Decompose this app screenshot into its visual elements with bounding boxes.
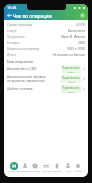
staticText: Банк получателя xyxy=(7,60,33,64)
button[interactable]: Help xyxy=(79,12,86,19)
staticText: Подключить xyxy=(62,76,80,80)
button[interactable]: Каталог xyxy=(41,162,51,173)
staticText: История xyxy=(30,170,40,173)
staticText: Итого xyxy=(7,53,42,57)
staticText: Получатель xyxy=(7,35,42,39)
staticText: Выполнено xyxy=(44,29,85,33)
staticText: Телефон xyxy=(7,41,42,45)
button[interactable]: Шаблон платежа xyxy=(7,85,86,93)
staticText: Сумма перевода xyxy=(7,23,42,27)
staticText: Не взимается банком xyxy=(44,53,85,57)
staticText: 3000 xyxy=(44,41,85,45)
staticText: 5555 •• 0000 xyxy=(44,47,85,51)
staticText: Автоматический перевод по времени, ежеме… xyxy=(7,75,59,83)
button[interactable]: Автоплатёж по СМС xyxy=(7,65,86,73)
button[interactable]: Главный xyxy=(9,162,19,173)
staticText: Платежи xyxy=(20,170,30,173)
staticText: за 0 ₽ xyxy=(68,80,75,83)
staticText: 4,97 ₽ xyxy=(44,23,85,27)
staticText: Чек по операции xyxy=(13,13,52,19)
button[interactable]: Автоматический перевод по времени, ежеме… xyxy=(7,75,86,83)
staticText: Автоплатёж по СМС xyxy=(7,67,59,71)
staticText: Главный xyxy=(9,170,19,173)
staticText: Комиссия за перевод xyxy=(7,47,42,51)
button[interactable]: История xyxy=(30,162,40,173)
button[interactable]: Back xyxy=(6,12,13,19)
button[interactable]: Профиль xyxy=(73,162,83,176)
staticText: Подключить xyxy=(62,66,80,70)
button[interactable]: Ещё xyxy=(63,162,73,173)
button[interactable]: Платежи xyxy=(20,162,30,173)
staticText: Каталог xyxy=(42,170,51,173)
staticText: Подключить xyxy=(62,86,80,90)
button[interactable]: Диалоги xyxy=(52,162,62,173)
staticText: за 0 ₽ xyxy=(68,70,75,73)
staticText: Иван И. Иванов xyxy=(44,35,85,39)
staticText: Шаблон платежа xyxy=(7,87,59,91)
staticText: Статус xyxy=(7,29,42,33)
staticText: Диалоги xyxy=(52,170,62,173)
staticText: за 0 ₽ xyxy=(68,90,75,93)
staticText: Ещё xyxy=(66,170,71,173)
staticText: Профиль xyxy=(73,170,83,176)
staticText: 10:48 xyxy=(7,5,17,10)
